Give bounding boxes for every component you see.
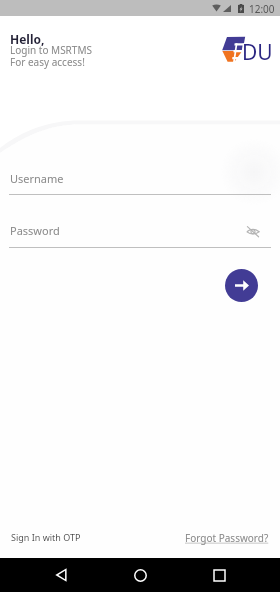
- staticText: Password: [10, 223, 60, 238]
- button[interactable]: Home: [127, 562, 153, 588]
- staticText: Sign In with OTP: [11, 531, 81, 543]
- button[interactable]: Sign in: [225, 269, 258, 302]
- button[interactable]: Back: [49, 562, 75, 588]
- button[interactable]: Forgot Password?: [179, 526, 275, 550]
- button[interactable]: Show password: [246, 226, 260, 237]
- staticText: For easy access!: [10, 55, 85, 69]
- staticText: 12:00: [249, 2, 275, 16]
- staticText: Login to MSRTMS: [10, 43, 92, 57]
- staticText: Forgot Password?: [185, 531, 269, 545]
- staticText: DU: [242, 38, 273, 67]
- staticText: Username: [10, 171, 64, 186]
- button[interactable]: Sign In with OTP: [5, 526, 87, 548]
- button[interactable]: Recents: [206, 562, 232, 588]
- staticText: Hello,: [10, 31, 45, 47]
